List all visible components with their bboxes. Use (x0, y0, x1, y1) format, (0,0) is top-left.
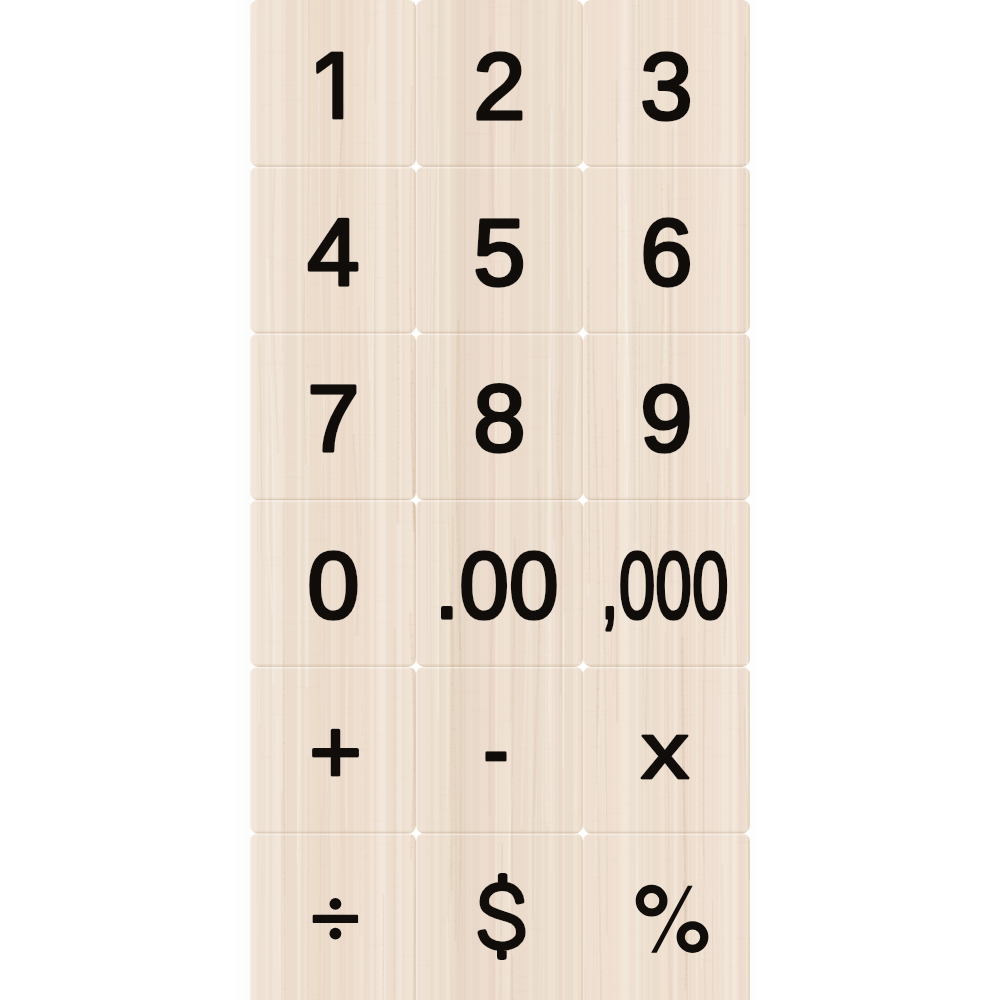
staticText: 8 (473, 366, 526, 471)
staticText: 3 (640, 34, 693, 139)
staticText: 9 (640, 366, 693, 471)
staticText: 6 (640, 200, 693, 305)
button[interactable]: 7 (250, 332, 416, 499)
staticText: .00 (434, 533, 559, 638)
staticText: 5 (473, 200, 526, 305)
button[interactable]: Divide (250, 833, 416, 1000)
staticText: 0 (307, 533, 360, 638)
staticText: 9 (640, 366, 693, 471)
button[interactable]: + (250, 666, 416, 833)
button[interactable]: 0 (250, 499, 416, 666)
staticText: - (483, 700, 509, 801)
staticText: 7 (307, 366, 360, 471)
staticText: $ (474, 866, 529, 966)
button[interactable]: 2 (416, 0, 583, 166)
staticText: 8 (473, 366, 526, 471)
button[interactable]: - (416, 666, 583, 833)
staticText: $ (474, 866, 529, 966)
button[interactable]: 8 (416, 332, 583, 499)
staticText: 2 (473, 34, 526, 139)
staticText: + (309, 702, 362, 803)
staticText: ,000 (600, 533, 729, 638)
staticText: 1 (313, 32, 350, 140)
staticText: + (309, 702, 362, 803)
button[interactable]: x (583, 666, 750, 833)
staticText: 3 (640, 34, 693, 139)
staticText: x (641, 706, 689, 795)
button[interactable]: 6 (583, 166, 750, 332)
button[interactable]: 5 (416, 166, 583, 332)
staticText: 0 (307, 533, 360, 638)
staticText: 5 (473, 200, 526, 305)
button[interactable]: 1 (250, 0, 416, 166)
button[interactable]: ,000 (583, 499, 750, 666)
staticText: 1 (313, 32, 350, 140)
staticText: x (641, 706, 689, 795)
button[interactable]: 3 (583, 0, 750, 166)
staticText: ,000 (600, 533, 729, 638)
button[interactable]: $ (416, 833, 583, 1000)
staticText: .00 (434, 533, 559, 638)
staticText: 2 (473, 34, 526, 139)
staticText: 4 (307, 200, 360, 305)
staticText: 6 (640, 200, 693, 305)
button[interactable]: Percent (583, 833, 750, 1000)
staticText: 7 (307, 366, 360, 471)
button[interactable]: 9 (583, 332, 750, 499)
button[interactable]: 4 (250, 166, 416, 332)
staticText: - (483, 700, 509, 801)
button[interactable]: .00 (416, 499, 583, 666)
staticText: 4 (307, 200, 360, 305)
